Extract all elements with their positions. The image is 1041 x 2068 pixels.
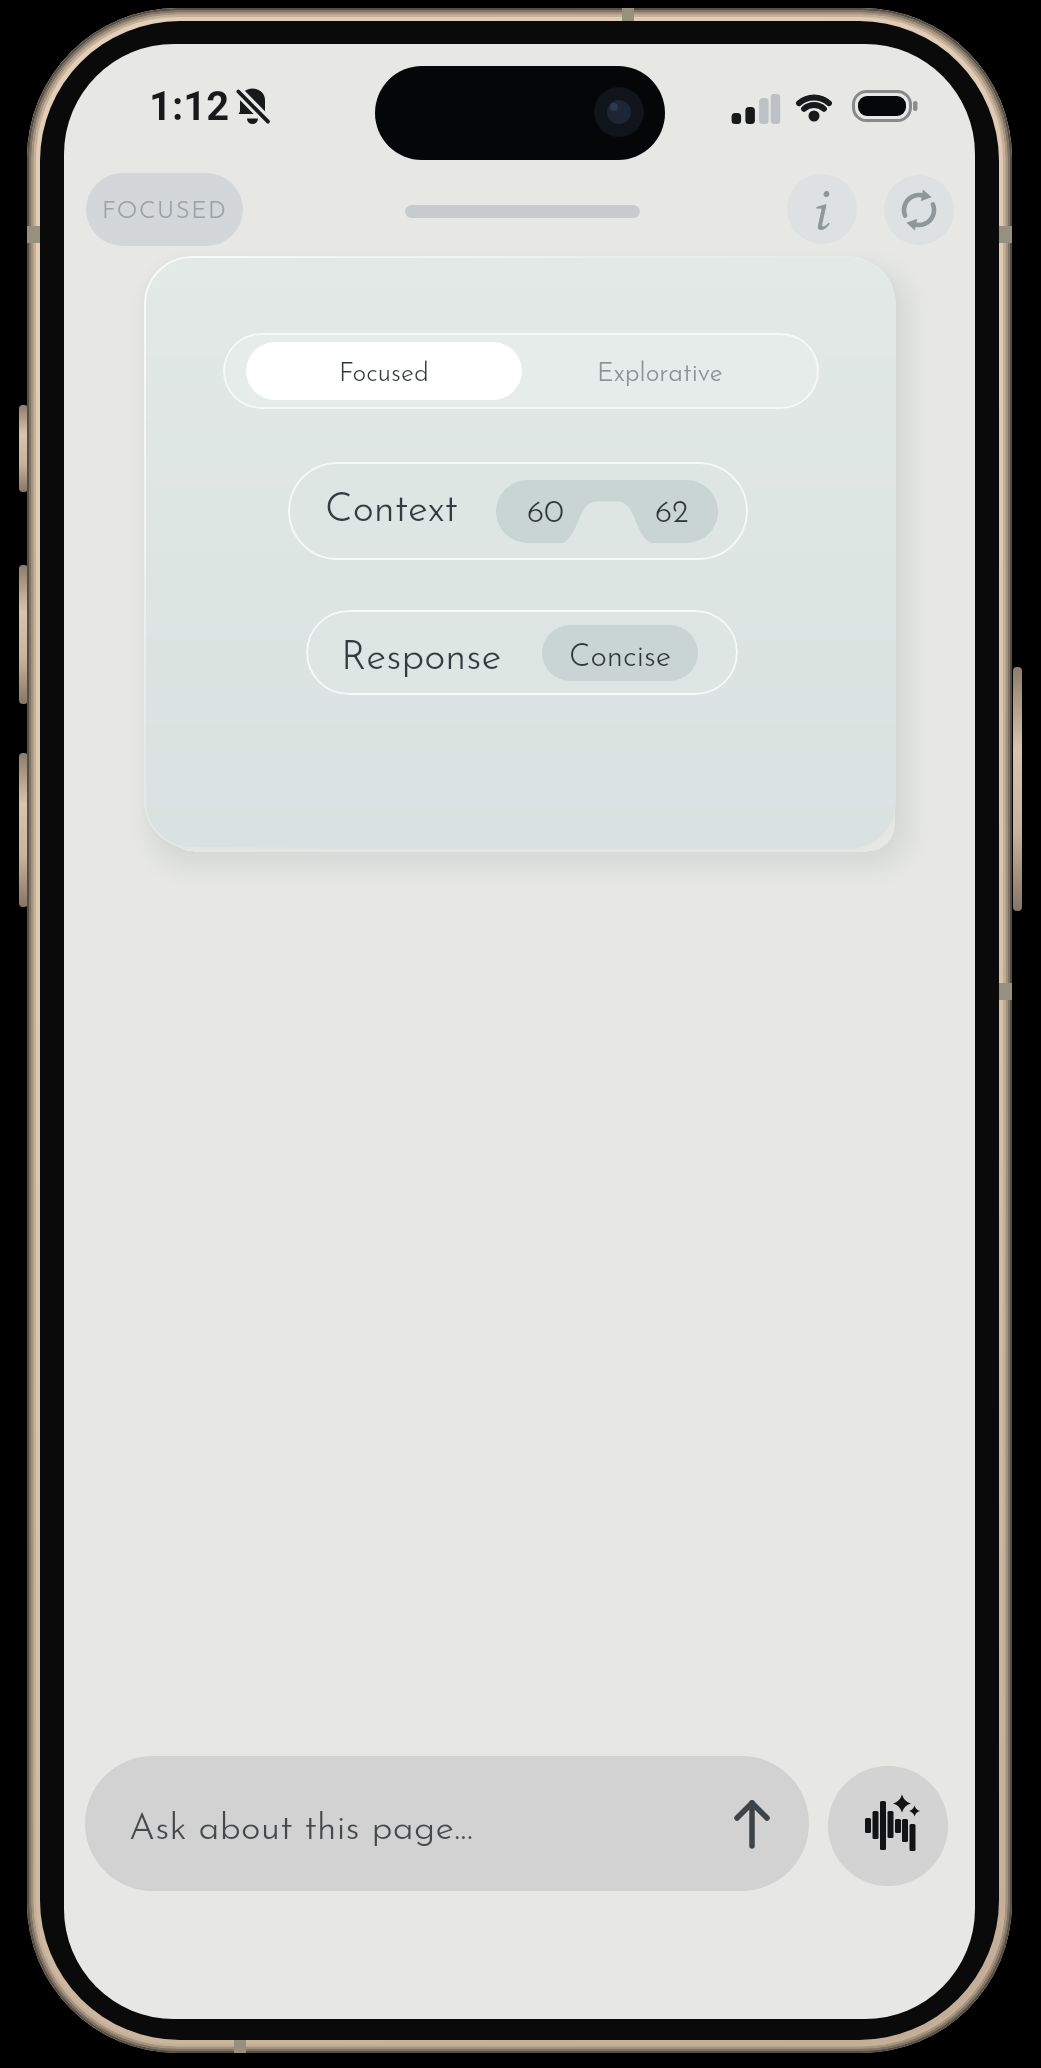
staticText: Context xyxy=(325,491,458,531)
staticText: i xyxy=(814,174,831,244)
staticText: FOCUSED xyxy=(102,200,228,224)
button[interactable]: Ask about this page... xyxy=(85,1756,809,1891)
button[interactable]: Focused xyxy=(246,342,522,400)
button[interactable]: 60 xyxy=(496,480,718,543)
staticText: Ask about this page... xyxy=(129,1811,474,1848)
button[interactable]: FOCUSED xyxy=(86,173,243,246)
staticText: 62 xyxy=(655,498,689,530)
staticText: Explorative xyxy=(597,361,723,387)
staticText: 1:12 xyxy=(149,83,230,127)
staticText: 60 xyxy=(527,498,564,530)
button[interactable] xyxy=(724,1792,780,1856)
staticText: Response xyxy=(341,639,502,679)
button[interactable]: i xyxy=(787,174,857,244)
staticText: Focused xyxy=(339,361,429,387)
button[interactable] xyxy=(828,1766,948,1886)
button[interactable] xyxy=(884,175,954,245)
button[interactable]: Explorative xyxy=(511,333,809,409)
button[interactable]: Concise xyxy=(542,625,698,681)
staticText: Concise xyxy=(569,643,672,674)
